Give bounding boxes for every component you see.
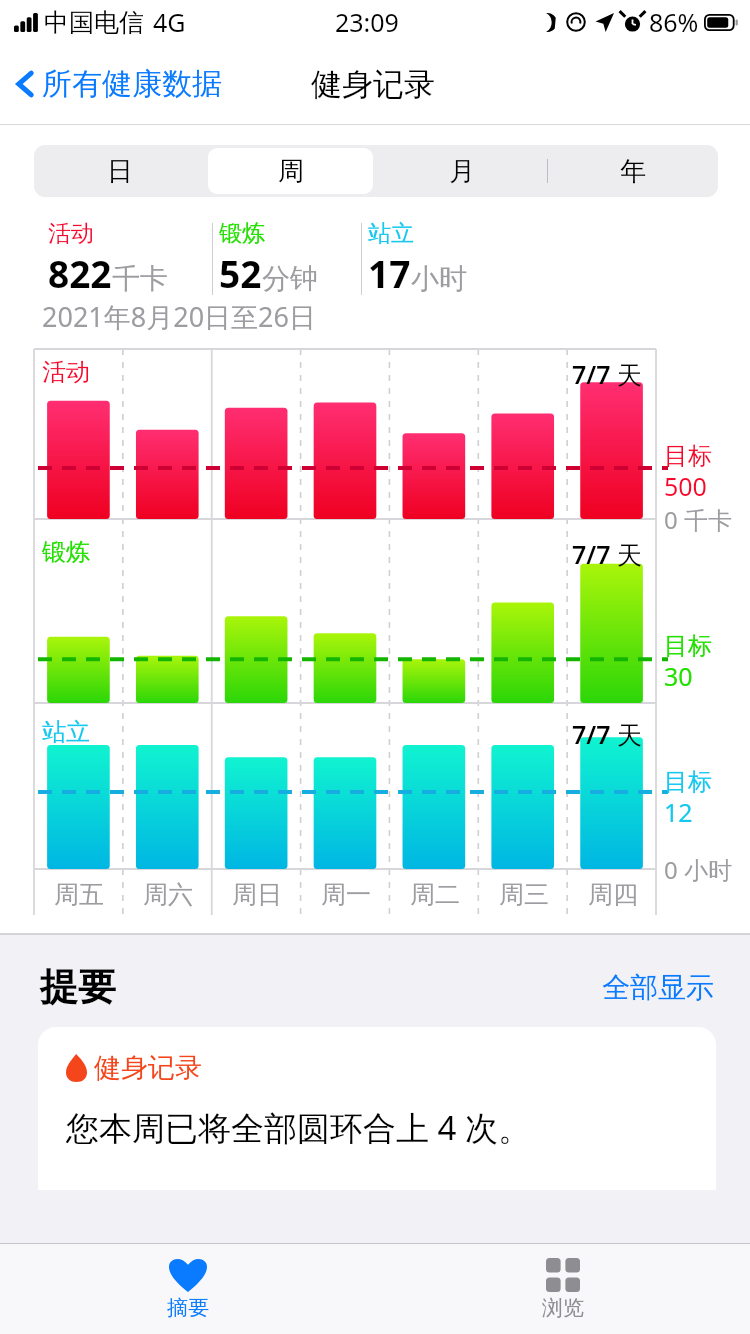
button[interactable]: 返回	[12, 64, 222, 104]
staticText: 活动	[48, 219, 94, 248]
staticText: 千卡	[112, 261, 168, 296]
staticText: 日	[107, 155, 133, 188]
staticText: 0 小时	[664, 853, 732, 886]
other: 返回	[12, 64, 38, 104]
staticText: 7/7 天	[572, 717, 643, 751]
staticText: 您本周已将全部圆环合上 4 次。	[66, 1105, 532, 1150]
button[interactable]: 浏览	[375, 1244, 750, 1334]
staticText: 2021年8月20日至26日	[42, 298, 316, 335]
staticText: 目标	[664, 441, 712, 471]
staticText: 7/7 天	[572, 537, 643, 571]
staticText: 23:09	[335, 5, 399, 39]
staticText: 7/7 天	[572, 357, 643, 391]
staticText: 浏览	[542, 1295, 584, 1321]
staticText: 健身记录	[311, 65, 435, 104]
staticText: 17	[368, 248, 411, 298]
staticText: 0 千卡	[664, 503, 732, 536]
staticText: 站立	[42, 717, 90, 747]
staticText: 86%	[649, 5, 699, 39]
staticText: 目标	[664, 767, 712, 797]
staticText: 中国电信	[44, 7, 144, 38]
staticText: 周日	[232, 879, 282, 910]
staticText: 周一	[321, 879, 371, 910]
staticText: 4G	[153, 5, 186, 39]
button[interactable]: 摘要	[0, 1244, 375, 1334]
staticText: 12	[664, 795, 693, 829]
staticText: 活动	[42, 357, 90, 387]
button[interactable]: 健身记录	[38, 1027, 716, 1190]
staticText: 健身记录	[94, 1051, 202, 1085]
staticText: 周二	[410, 879, 460, 910]
staticText: 锻炼	[42, 537, 90, 567]
button[interactable]: 日	[34, 145, 205, 197]
staticText: 52	[219, 248, 262, 298]
button[interactable]: 月	[376, 145, 547, 197]
staticText: 锻炼	[219, 219, 265, 248]
staticText: 30	[664, 659, 693, 693]
staticText: 周	[278, 155, 304, 188]
staticText: 周六	[143, 879, 193, 910]
staticText: 周五	[54, 879, 104, 910]
staticText: 摘要	[167, 1295, 209, 1321]
staticText: 目标	[664, 631, 712, 661]
staticText: 周三	[499, 879, 549, 910]
button[interactable]: 周	[205, 145, 376, 197]
staticText: 500	[664, 469, 707, 503]
button[interactable]: 全部显示	[602, 970, 714, 1005]
staticText: 月	[449, 155, 475, 188]
staticText: 822	[48, 248, 112, 298]
staticText: 提要	[40, 963, 116, 1011]
staticText: 年	[620, 155, 646, 188]
staticText: 周四	[588, 879, 638, 910]
staticText: 小时	[411, 261, 467, 296]
button[interactable]: 年	[547, 145, 718, 197]
staticText: 分钟	[262, 261, 318, 296]
staticText: 全部显示	[602, 970, 714, 1005]
staticText: 站立	[368, 219, 414, 248]
staticText: 所有健康数据	[42, 65, 222, 103]
